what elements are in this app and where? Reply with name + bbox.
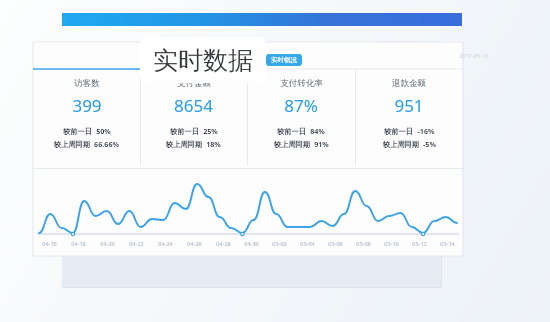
staticText: 05-08 (356, 240, 371, 247)
staticText: 18% (206, 139, 221, 149)
staticText: 04-22 (129, 240, 144, 247)
button[interactable]: 实时数据 (140, 37, 266, 83)
staticText: 04-16 (42, 240, 57, 247)
staticText: 退款金额 (392, 78, 426, 89)
staticText: 实时概况 (271, 56, 297, 64)
staticText: 较前一日 (277, 127, 306, 136)
staticText: 04-20 (100, 240, 115, 247)
staticText: 实时数据 (153, 45, 253, 76)
staticText: 05-12 (412, 240, 427, 247)
staticText: 支付转化率 (280, 78, 323, 89)
staticText: 04-28 (216, 240, 231, 247)
staticText: 2017-05-13 (459, 52, 488, 59)
button[interactable]: 退款金额 (355, 70, 463, 166)
button[interactable]: 支付转化率 (247, 70, 355, 166)
staticText: 访客数 (74, 78, 100, 89)
button[interactable]: 支付金额 (140, 70, 247, 166)
button[interactable]: 访客数 (33, 70, 140, 166)
staticText: 04-26 (187, 240, 202, 247)
staticText: 04-18 (71, 240, 86, 247)
staticText: 05-02 (272, 240, 287, 247)
staticText: 较上周同期 (54, 140, 90, 149)
staticText: 50% (96, 126, 111, 136)
staticText: 399 (72, 94, 102, 117)
staticText: 较前一日 (170, 127, 199, 136)
staticText: 较上周同期 (274, 140, 310, 149)
staticText: 05-06 (328, 240, 343, 247)
staticText: 04-24 (158, 240, 173, 247)
staticText: -16% (417, 126, 435, 136)
button[interactable]: 实时概况 (266, 54, 302, 66)
staticText: 84% (310, 126, 325, 136)
staticText: 05-10 (384, 240, 399, 247)
staticText: 951 (394, 94, 424, 117)
staticText: 支付金额 (177, 78, 211, 89)
staticText: -5% (423, 139, 436, 149)
staticText: 05-14 (440, 240, 455, 247)
staticText: 较前一日 (384, 127, 413, 136)
staticText: 66.66% (94, 139, 119, 149)
staticText: 8654 (174, 94, 213, 117)
staticText: 91% (314, 139, 329, 149)
staticText: 05-04 (300, 240, 315, 247)
staticText: 87% (284, 94, 318, 117)
staticText: 04-30 (244, 240, 259, 247)
staticText: 较前一日 (63, 127, 92, 136)
staticText: 25% (203, 126, 218, 136)
staticText: 较上周同期 (383, 140, 419, 149)
staticText: 较上周同期 (166, 140, 202, 149)
